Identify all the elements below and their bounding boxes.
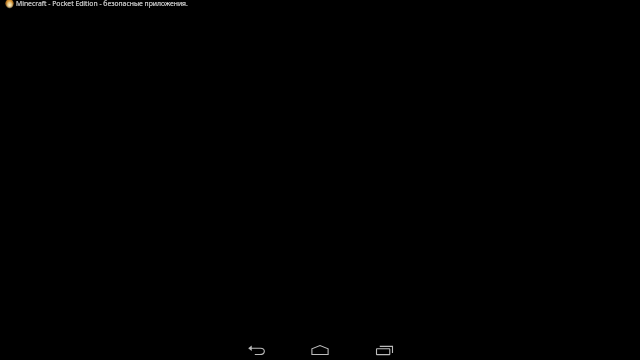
button[interactable]: App icon [0,0,640,14]
button[interactable]: Recent apps [352,340,416,360]
staticText: Minecraft - Pocket Edition - безопасные … [16,0,188,8]
button[interactable]: Home [288,340,352,360]
other: App icon [5,0,14,8]
button[interactable]: Back [224,340,288,360]
